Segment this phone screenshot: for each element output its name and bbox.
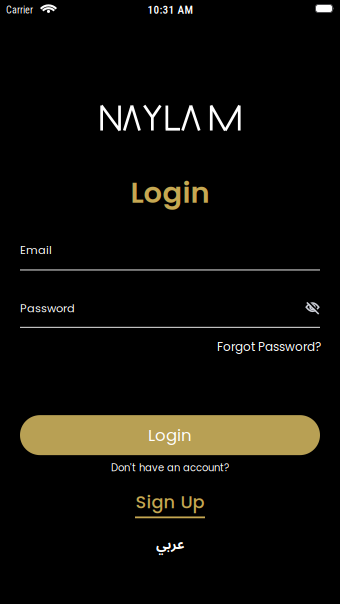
staticText: 10:31 AM [147,3,192,16]
staticText: Login [130,172,209,213]
staticText: Don't have an account? [111,461,229,475]
button[interactable]: Switch to Arabic [155,530,184,559]
staticText: Forgot Password? [217,338,321,355]
button[interactable]: Login [20,415,320,455]
button[interactable]: Sign Up [135,490,205,518]
button[interactable]: Forgot Password? [217,338,321,355]
button[interactable]: Email [0,242,340,270]
staticText: عربي [155,530,184,559]
button[interactable]: Show password [305,302,340,316]
staticText: Password [20,300,75,316]
staticText: Email [20,242,52,258]
button[interactable]: Password [0,300,340,328]
staticText: Carrier [6,4,33,16]
staticText: Login [148,424,192,447]
staticText: Sign Up [135,490,204,514]
